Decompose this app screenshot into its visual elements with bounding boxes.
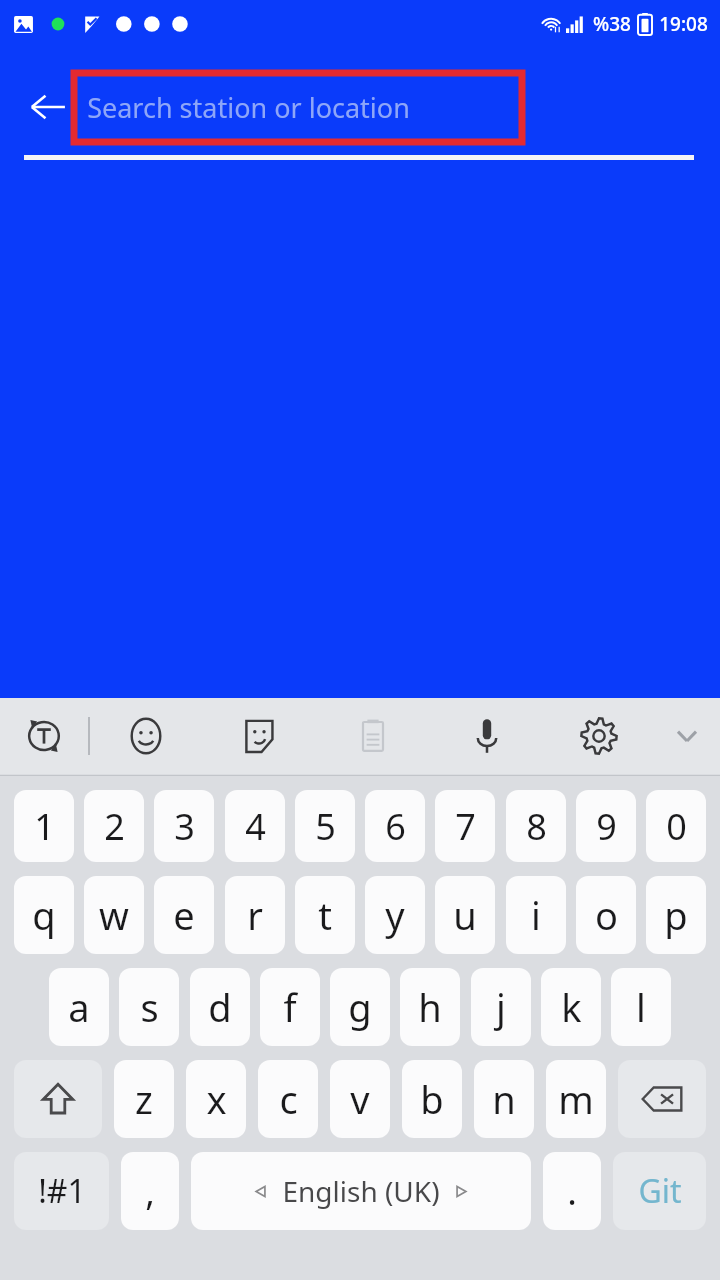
- button[interactable]: Emoji: [90, 698, 202, 774]
- button[interactable]: 3: [154, 790, 214, 862]
- button[interactable]: .: [543, 1152, 601, 1230]
- button[interactable]: p: [646, 876, 706, 954]
- staticText: w: [99, 889, 129, 941]
- button[interactable]: Search station or location: [74, 73, 522, 142]
- button[interactable]: w: [84, 876, 144, 954]
- button[interactable]: English (UK): [191, 1152, 531, 1230]
- button[interactable]: y: [365, 876, 425, 954]
- staticText: !#1: [38, 1169, 86, 1213]
- staticText: Git: [638, 1169, 682, 1213]
- staticText: a: [68, 981, 90, 1033]
- button[interactable]: Translate: [0, 698, 88, 774]
- button[interactable]: Git: [613, 1152, 706, 1230]
- staticText: 1: [34, 802, 55, 851]
- staticText: 5: [315, 802, 336, 851]
- staticText: 9: [596, 802, 617, 851]
- staticText: o: [595, 889, 618, 941]
- button[interactable]: Hide keyboard: [654, 698, 720, 774]
- staticText: .: [567, 1167, 577, 1216]
- button[interactable]: 4: [225, 790, 285, 862]
- button[interactable]: l: [611, 968, 671, 1046]
- button[interactable]: a: [49, 968, 109, 1046]
- staticText: c: [279, 1073, 298, 1125]
- button[interactable]: Back: [13, 72, 83, 142]
- staticText: h: [418, 981, 442, 1033]
- button[interactable]: z: [114, 1060, 174, 1138]
- staticText: v: [350, 1073, 370, 1125]
- staticText: m: [558, 1073, 594, 1125]
- staticText: 2: [104, 802, 125, 851]
- staticText: g: [348, 981, 372, 1033]
- staticText: Search station or location: [87, 89, 410, 126]
- button[interactable]: g: [330, 968, 390, 1046]
- button[interactable]: e: [154, 876, 214, 954]
- button[interactable]: Clipboard: [316, 698, 430, 774]
- staticText: i: [531, 889, 541, 941]
- staticText: x: [206, 1073, 227, 1125]
- button[interactable]: 7: [435, 790, 495, 862]
- button[interactable]: i: [506, 876, 566, 954]
- staticText: y: [385, 889, 405, 941]
- button[interactable]: Voice input: [430, 698, 544, 774]
- button[interactable]: Shift: [14, 1060, 102, 1138]
- button[interactable]: c: [258, 1060, 318, 1138]
- button[interactable]: d: [190, 968, 250, 1046]
- staticText: %38: [593, 11, 631, 37]
- staticText: l: [636, 981, 646, 1033]
- button[interactable]: t: [295, 876, 355, 954]
- button[interactable]: Stickers: [202, 698, 316, 774]
- staticText: English (UK): [282, 1172, 440, 1210]
- staticText: r: [247, 889, 263, 941]
- staticText: n: [492, 1073, 516, 1125]
- staticText: 8: [526, 802, 547, 851]
- button[interactable]: v: [330, 1060, 390, 1138]
- staticText: b: [420, 1073, 444, 1125]
- button[interactable]: 8: [506, 790, 566, 862]
- staticText: 7: [455, 802, 476, 851]
- staticText: s: [140, 981, 159, 1033]
- staticText: q: [32, 889, 56, 941]
- button[interactable]: o: [576, 876, 636, 954]
- button[interactable]: u: [435, 876, 495, 954]
- staticText: 6: [385, 802, 406, 851]
- staticText: 19:08: [659, 11, 708, 37]
- staticText: k: [561, 981, 582, 1033]
- staticText: f: [283, 981, 297, 1033]
- button[interactable]: 1: [14, 790, 74, 862]
- staticText: 4: [245, 802, 266, 851]
- staticText: p: [664, 889, 688, 941]
- button[interactable]: ,: [121, 1152, 179, 1230]
- button[interactable]: 5: [295, 790, 355, 862]
- staticText: j: [496, 981, 506, 1033]
- button[interactable]: Settings: [544, 698, 654, 774]
- staticText: ,: [145, 1167, 155, 1216]
- button[interactable]: j: [471, 968, 531, 1046]
- staticText: 3: [174, 802, 195, 851]
- staticText: e: [173, 889, 195, 941]
- button[interactable]: n: [474, 1060, 534, 1138]
- button[interactable]: !#1: [14, 1152, 109, 1230]
- button[interactable]: q: [14, 876, 74, 954]
- button[interactable]: Backspace: [618, 1060, 706, 1138]
- button[interactable]: m: [546, 1060, 606, 1138]
- button[interactable]: 6: [365, 790, 425, 862]
- staticText: 0: [666, 802, 687, 851]
- button[interactable]: b: [402, 1060, 462, 1138]
- button[interactable]: 9: [576, 790, 636, 862]
- button[interactable]: 2: [84, 790, 144, 862]
- staticText: u: [453, 889, 477, 941]
- staticText: z: [135, 1073, 153, 1125]
- button[interactable]: x: [186, 1060, 246, 1138]
- button[interactable]: 0: [646, 790, 706, 862]
- button[interactable]: r: [225, 876, 285, 954]
- staticText: t: [318, 889, 332, 941]
- staticText: d: [208, 981, 232, 1033]
- button[interactable]: k: [541, 968, 601, 1046]
- button[interactable]: f: [260, 968, 320, 1046]
- button[interactable]: h: [400, 968, 460, 1046]
- button[interactable]: s: [119, 968, 179, 1046]
